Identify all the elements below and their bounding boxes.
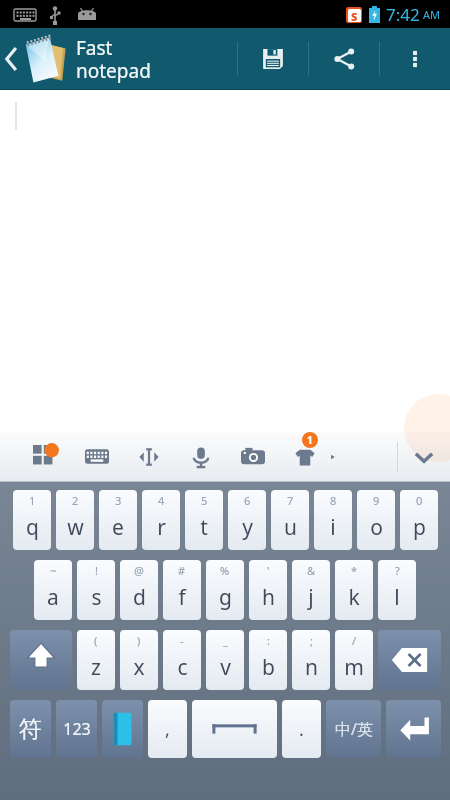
staticText: S	[351, 9, 358, 22]
staticText: m	[344, 653, 364, 682]
staticText: b	[262, 653, 275, 682]
button[interactable]: Fast notepad	[0, 28, 237, 90]
staticText: k	[348, 583, 360, 612]
button[interactable]: ~	[34, 560, 72, 620]
staticText: i	[330, 513, 336, 542]
staticText: 1	[307, 433, 313, 447]
staticText: 6	[244, 493, 251, 508]
button[interactable]: Share	[309, 28, 379, 90]
staticText: '	[267, 563, 270, 578]
button[interactable]: '	[249, 560, 287, 620]
staticText: 8	[330, 493, 337, 508]
button[interactable]: More options	[380, 28, 450, 90]
staticText: 7:42	[386, 3, 420, 26]
staticText: p	[413, 513, 426, 542]
button[interactable]: Hide keyboard	[398, 432, 450, 482]
button[interactable]: 8	[314, 490, 352, 550]
staticText: *	[351, 563, 358, 578]
button[interactable]: Language	[102, 700, 143, 758]
staticText: &	[307, 563, 316, 578]
button[interactable]: Voice input	[186, 442, 216, 472]
button[interactable]: (	[77, 630, 115, 690]
staticText: (	[94, 633, 98, 648]
staticText: 中/英	[335, 718, 373, 740]
button[interactable]: 1	[13, 490, 51, 550]
staticText: u	[284, 513, 297, 542]
staticText: x	[133, 653, 145, 682]
button[interactable]: )	[120, 630, 158, 690]
button[interactable]: 中/英	[326, 700, 381, 758]
button[interactable]: -	[163, 630, 201, 690]
button[interactable]: &	[292, 560, 330, 620]
staticText: 3	[115, 493, 122, 508]
button[interactable]: /	[335, 630, 373, 690]
button[interactable]: Space	[192, 700, 277, 758]
button[interactable]: .	[282, 700, 321, 758]
button[interactable]: Save	[238, 28, 308, 90]
staticText: l	[394, 583, 400, 612]
button[interactable]: ;	[292, 630, 330, 690]
button[interactable]: 6	[228, 490, 266, 550]
staticText: g	[219, 583, 232, 612]
staticText: /	[352, 633, 357, 648]
staticText: %	[220, 563, 230, 578]
button[interactable]: 符	[10, 700, 51, 758]
staticText: !	[95, 563, 98, 578]
staticText: )	[137, 633, 141, 648]
staticText: :	[267, 633, 270, 648]
staticText: ;	[310, 633, 313, 648]
button[interactable]: *	[335, 560, 373, 620]
button[interactable]: 0	[400, 490, 438, 550]
staticText: 5	[201, 493, 208, 508]
button[interactable]: ,	[148, 700, 187, 758]
staticText: ~	[50, 563, 57, 578]
staticText: 2	[72, 493, 79, 508]
staticText: 123	[63, 718, 91, 740]
button[interactable]: #	[163, 560, 201, 620]
staticText: Fast notepad	[76, 35, 151, 84]
staticText: 7	[287, 493, 294, 508]
staticText: ,	[165, 717, 170, 742]
button[interactable]: Menu	[30, 442, 60, 472]
button[interactable]: 4	[142, 490, 180, 550]
button[interactable]: Cursor	[134, 442, 164, 472]
button[interactable]: 123	[56, 700, 97, 758]
staticText: 4	[158, 493, 165, 508]
button[interactable]: 2	[56, 490, 94, 550]
staticText: #	[178, 563, 186, 578]
staticText: e	[112, 513, 124, 542]
button[interactable]: :	[249, 630, 287, 690]
staticText: 1	[29, 493, 36, 508]
button[interactable]: %	[206, 560, 244, 620]
button[interactable]: Enter	[386, 700, 441, 758]
staticText: AM	[423, 7, 441, 22]
button[interactable]: 5	[185, 490, 223, 550]
staticText: j	[308, 583, 314, 612]
button[interactable]: Backspace	[378, 630, 441, 690]
button[interactable]: 3	[99, 490, 137, 550]
staticText: q	[26, 513, 39, 542]
button[interactable]: _	[206, 630, 244, 690]
button[interactable]: Theme	[290, 442, 320, 472]
button[interactable]: Shift	[10, 630, 72, 690]
staticText: z	[91, 653, 101, 682]
button[interactable]: 9	[357, 490, 395, 550]
button[interactable]: !	[77, 560, 115, 620]
button[interactable]: Keyboard layout	[82, 442, 112, 472]
staticText: 符	[19, 715, 42, 744]
button[interactable]: 7	[271, 490, 309, 550]
staticText: -	[180, 633, 184, 648]
staticText: f	[178, 583, 186, 612]
staticText: v	[220, 653, 231, 682]
staticText: n	[305, 653, 318, 682]
staticText: o	[370, 513, 383, 542]
staticText: w	[67, 513, 84, 542]
staticText: ?	[395, 563, 400, 578]
staticText: .	[299, 717, 304, 742]
button[interactable]: @	[120, 560, 158, 620]
staticText: @	[134, 563, 144, 578]
button[interactable]: Camera	[238, 442, 268, 472]
button[interactable]: ?	[378, 560, 416, 620]
staticText: c	[177, 653, 188, 682]
